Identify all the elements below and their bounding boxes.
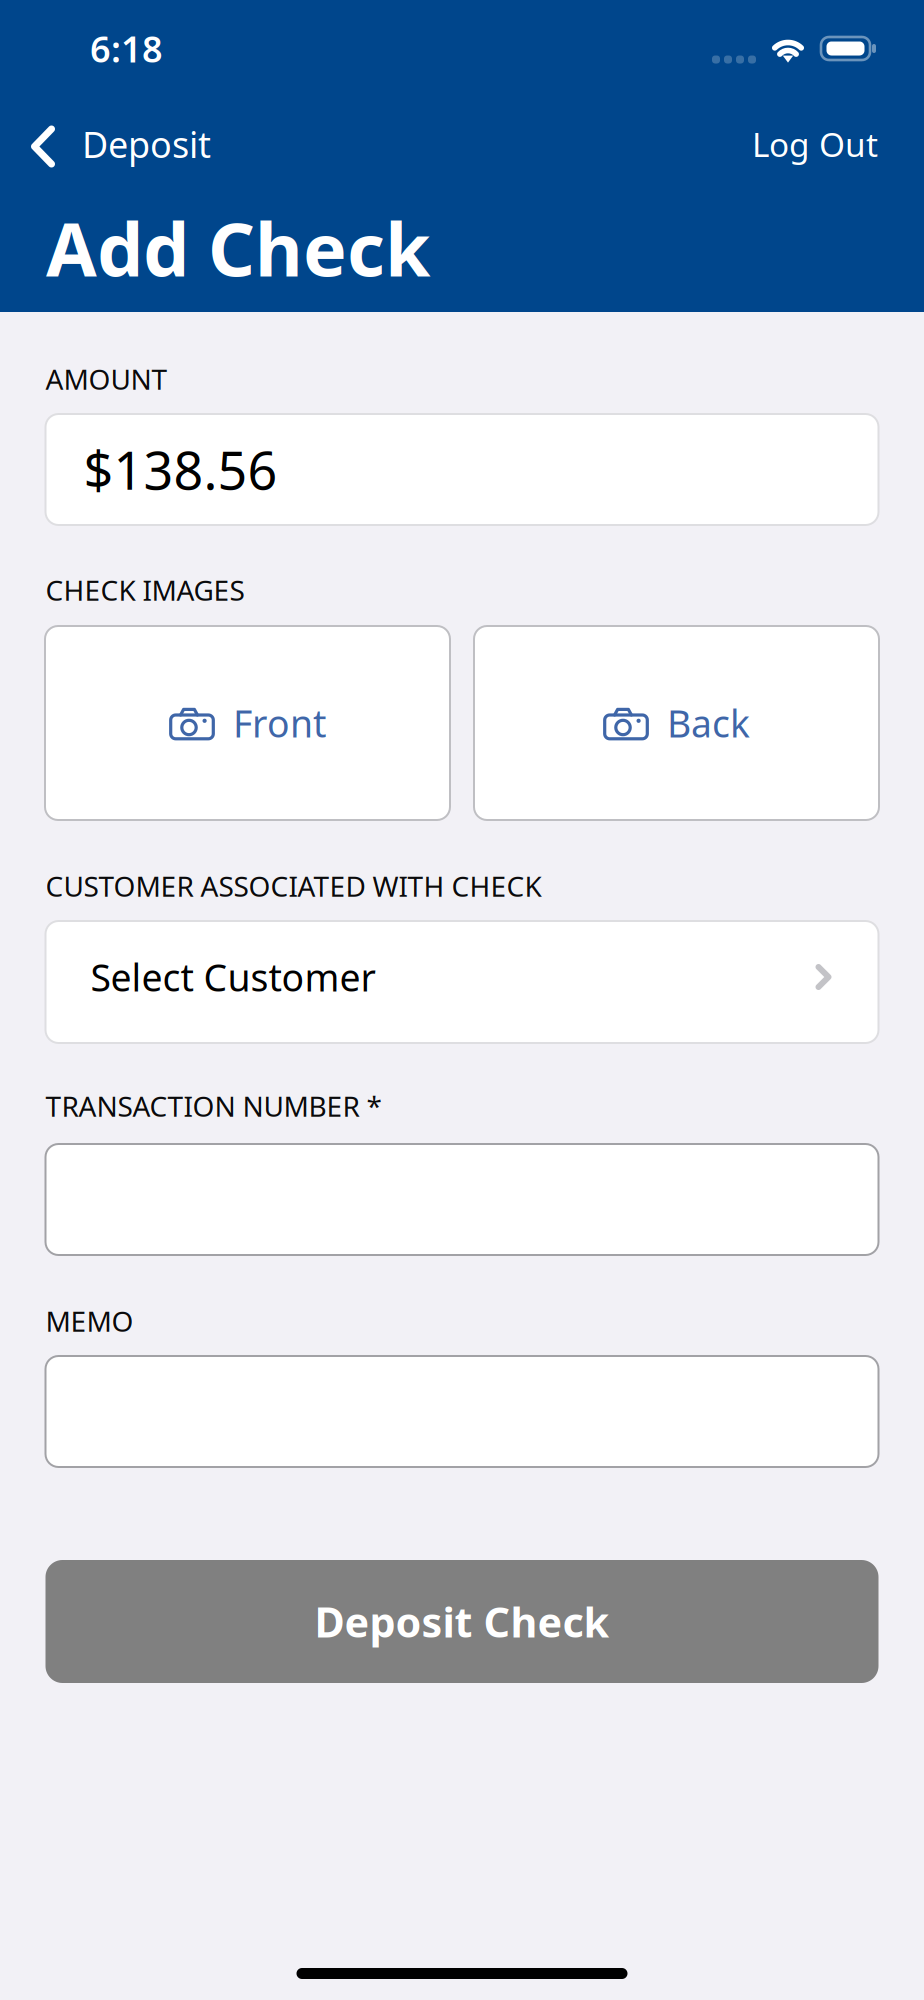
button[interactable]: Memo bbox=[45, 1356, 878, 1467]
staticText: 6:18 bbox=[90, 25, 163, 72]
staticText: Log Out bbox=[752, 122, 878, 166]
button[interactable]: $138.56 bbox=[45, 414, 878, 525]
button[interactable]: Back bbox=[474, 626, 879, 820]
button[interactable]: Transaction Number bbox=[45, 1144, 878, 1255]
button[interactable]: Deposit Check bbox=[45, 1560, 878, 1683]
staticText: MEMO bbox=[45, 1302, 133, 1340]
staticText: $138.56 bbox=[83, 435, 277, 504]
staticText: CUSTOMER ASSOCIATED WITH CHECK bbox=[45, 867, 541, 905]
button[interactable]: Deposit bbox=[0, 102, 233, 186]
staticText: Deposit Check bbox=[314, 1594, 609, 1649]
staticText: Front bbox=[233, 698, 326, 748]
staticText: Deposit bbox=[82, 120, 211, 168]
staticText: CHECK IMAGES bbox=[45, 571, 244, 609]
staticText: Back bbox=[667, 698, 750, 748]
staticText: TRANSACTION NUMBER * bbox=[45, 1087, 381, 1125]
staticText: AMOUNT bbox=[45, 360, 167, 398]
button[interactable]: Select Customer bbox=[45, 921, 878, 1043]
button[interactable]: Log Out bbox=[728, 102, 902, 186]
staticText: Add Check bbox=[46, 199, 430, 297]
button[interactable]: Front bbox=[45, 626, 450, 820]
staticText: Select Customer bbox=[90, 952, 375, 1002]
